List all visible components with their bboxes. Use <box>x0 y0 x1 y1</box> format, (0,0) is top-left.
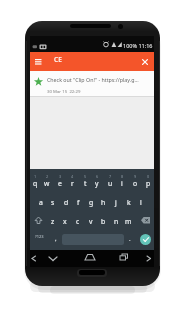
button[interactable] <box>84 251 96 263</box>
staticText: k <box>127 198 131 207</box>
staticText: h <box>101 198 106 207</box>
staticText: j <box>115 198 117 207</box>
button[interactable] <box>47 253 58 264</box>
button[interactable]: k <box>123 193 135 211</box>
button[interactable]: e <box>54 174 66 192</box>
button[interactable] <box>138 213 153 228</box>
staticText: n <box>114 217 119 226</box>
staticText: t <box>84 179 87 188</box>
staticText: , <box>55 235 57 243</box>
staticText: g <box>89 198 94 207</box>
staticText: 5 <box>84 174 87 179</box>
staticText: 6 <box>96 174 99 179</box>
button[interactable]: h <box>97 193 109 211</box>
staticText: p <box>146 179 151 188</box>
button[interactable]: Check out "Clip On!" - https://play.g… <box>30 71 154 96</box>
staticText: m <box>125 217 132 226</box>
button[interactable]: p <box>142 174 154 192</box>
button[interactable] <box>30 252 38 264</box>
staticText: 3 <box>59 174 62 179</box>
staticText: l <box>140 198 142 207</box>
staticText: r <box>71 179 74 188</box>
staticText: 0 <box>147 174 150 179</box>
button[interactable]: w <box>41 174 53 192</box>
button[interactable]: l <box>135 193 147 211</box>
button[interactable] <box>145 252 153 264</box>
staticText: o <box>133 179 138 188</box>
staticText: d <box>64 198 69 207</box>
button[interactable]: c <box>72 212 84 230</box>
staticText: z <box>51 217 55 226</box>
staticText: Check out "Clip On!" - https://play.g… <box>47 76 139 83</box>
button[interactable]: s <box>47 193 59 211</box>
button[interactable]: i <box>116 174 128 192</box>
button[interactable] <box>140 234 151 245</box>
button[interactable]: y <box>91 174 103 192</box>
staticText: 30 Mar 15 22:29 <box>47 88 81 94</box>
staticText: f <box>77 198 80 207</box>
staticText: i <box>121 179 123 188</box>
button[interactable]: , <box>50 230 62 248</box>
button[interactable]: m <box>122 212 134 230</box>
staticText: 1 <box>34 174 37 179</box>
button[interactable]: o <box>129 174 141 192</box>
button[interactable]: z <box>47 212 59 230</box>
staticText: 9 <box>134 174 137 179</box>
button[interactable]: q <box>29 174 41 192</box>
button[interactable]: ?123 <box>31 229 47 244</box>
button[interactable]: u <box>104 174 116 192</box>
button[interactable]: t <box>79 174 91 192</box>
staticText: 8 <box>121 174 124 179</box>
staticText: q <box>33 179 38 188</box>
button[interactable]: d <box>60 193 72 211</box>
staticText: 100% 11:16 <box>123 42 153 49</box>
staticText: 2 <box>46 174 49 179</box>
button[interactable] <box>118 251 129 263</box>
button[interactable]: f <box>72 193 84 211</box>
button[interactable]: g <box>85 193 97 211</box>
staticText: ?123 <box>35 234 44 239</box>
button[interactable] <box>32 56 45 68</box>
button[interactable]: b <box>97 212 109 230</box>
staticText: w <box>44 179 50 188</box>
staticText: s <box>51 198 55 207</box>
staticText: v <box>89 217 93 226</box>
button[interactable]: r <box>66 174 78 192</box>
button[interactable]: v <box>85 212 97 230</box>
staticText: u <box>108 179 113 188</box>
button[interactable]: x <box>59 212 71 230</box>
button[interactable]: n <box>110 212 122 230</box>
staticText: x <box>63 217 67 226</box>
staticText: a <box>39 198 43 207</box>
staticText: . <box>129 235 131 243</box>
button[interactable]: . <box>124 230 136 248</box>
button[interactable] <box>138 56 151 68</box>
staticText: 4 <box>71 174 74 179</box>
staticText: 7 <box>109 174 112 179</box>
staticText: b <box>101 217 106 226</box>
staticText: c <box>76 217 80 226</box>
button[interactable]: j <box>110 193 122 211</box>
staticText: CE <box>54 55 62 64</box>
button[interactable]: a <box>35 193 47 211</box>
staticText: y <box>95 179 99 188</box>
button[interactable] <box>31 213 46 228</box>
staticText: e <box>58 179 62 188</box>
